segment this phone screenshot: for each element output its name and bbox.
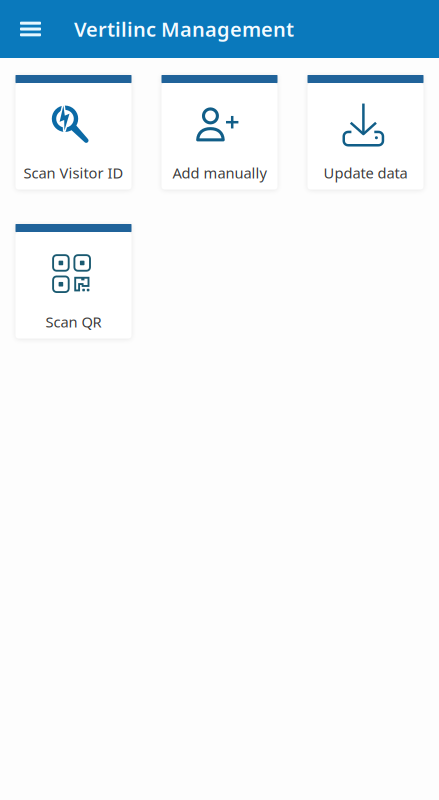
staticText: Scan QR — [45, 312, 101, 331]
button[interactable]: Open menu — [0, 0, 61, 58]
button[interactable]: Scan Visitor ID — [15, 75, 131, 189]
button[interactable]: Update data — [307, 75, 423, 189]
staticText: Add manually — [172, 163, 266, 182]
button[interactable]: Add manually — [161, 75, 277, 189]
staticText: Update data — [323, 163, 407, 182]
button[interactable]: Scan QR — [15, 224, 131, 338]
staticText: Scan Visitor ID — [23, 163, 123, 182]
staticText: Vertilinc Management — [74, 16, 294, 42]
